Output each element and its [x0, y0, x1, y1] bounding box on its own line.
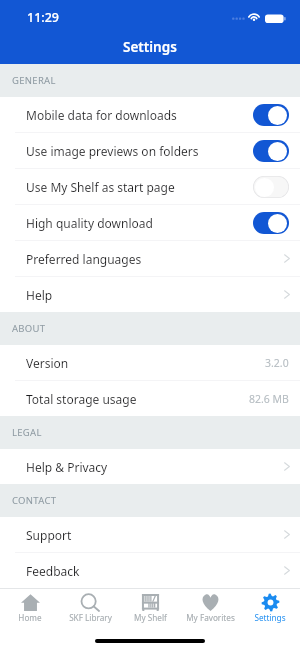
button[interactable]: Toggle on [253, 212, 289, 234]
staticText: 11:29 [27, 9, 60, 26]
staticText: ABOUT [12, 322, 46, 335]
staticText: Home [18, 612, 42, 623]
button[interactable]: Mobile data for downloads [0, 97, 300, 132]
button[interactable]: Version [0, 345, 300, 380]
staticText: High quality download [26, 215, 153, 231]
staticText: My Shelf [134, 612, 167, 623]
button[interactable]: Feedback [0, 553, 300, 588]
staticText: Version [26, 355, 69, 371]
button[interactable]: My Favorites [180, 589, 240, 623]
staticText: 82.6 MB [249, 392, 289, 406]
staticText: Help & Privacy [26, 459, 108, 475]
button[interactable]: Toggle off [253, 176, 289, 198]
button[interactable]: Settings [240, 589, 300, 623]
button[interactable]: High quality download [0, 205, 300, 240]
staticText: SKF Library [69, 612, 112, 623]
staticText: Total storage usage [26, 391, 137, 407]
staticText: GENERAL [12, 74, 56, 87]
button[interactable]: Home [0, 589, 60, 623]
button[interactable]: Use My Shelf as start page [0, 169, 300, 204]
button[interactable]: Use image previews on folders [0, 133, 300, 168]
staticText: Help [26, 287, 53, 303]
staticText: Use My Shelf as start page [26, 179, 175, 195]
button[interactable]: SKF Library [60, 589, 120, 623]
staticText: Settings [254, 612, 286, 623]
staticText: Use image previews on folders [26, 143, 199, 159]
button[interactable]: Preferred languages [0, 241, 300, 276]
staticText: LEGAL [12, 426, 42, 439]
staticText: Feedback [26, 563, 80, 579]
button[interactable]: Support [0, 517, 300, 552]
staticText: 3.2.0 [265, 356, 289, 370]
staticText: My Favorites [186, 612, 235, 623]
staticText: Settings [123, 38, 177, 56]
button[interactable]: Help & Privacy [0, 449, 300, 484]
button[interactable]: Total storage usage [0, 381, 300, 416]
button[interactable]: My Shelf [120, 589, 180, 623]
staticText: CONTACT [12, 494, 57, 507]
staticText: Preferred languages [26, 251, 142, 267]
staticText: Mobile data for downloads [26, 107, 177, 123]
button[interactable]: Toggle on [253, 104, 289, 126]
staticText: Support [26, 527, 72, 543]
button[interactable]: Toggle on [253, 140, 289, 162]
button[interactable]: Help [0, 277, 300, 312]
